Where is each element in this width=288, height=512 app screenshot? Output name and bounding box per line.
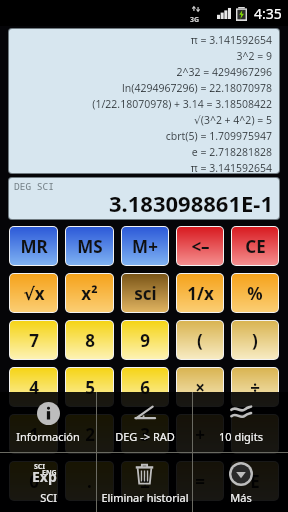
staticText: e = 2.718281828 <box>15 145 272 159</box>
staticText: 3G <box>190 15 200 25</box>
staticText: Exp <box>32 467 57 486</box>
staticText: 10 digits <box>219 429 263 444</box>
button[interactable]: DEG -> RAD <box>97 392 192 452</box>
staticText: π = 3.141592654 <box>15 161 272 173</box>
staticText: - <box>252 423 258 446</box>
staticText: DEG -> RAD <box>115 429 175 444</box>
button[interactable]: x² <box>66 274 113 312</box>
staticText: 7 <box>29 329 39 352</box>
staticText: E <box>250 470 260 493</box>
button[interactable]: 1/x <box>177 274 223 312</box>
button[interactable]: × <box>177 368 223 406</box>
staticText: CE <box>245 235 266 258</box>
staticText: SCI <box>40 490 57 505</box>
button[interactable]: sci <box>122 274 168 312</box>
staticText: % <box>247 282 263 305</box>
button[interactable]: ( <box>177 321 223 359</box>
staticText: 3^2 = 9 <box>15 49 272 63</box>
staticText: ( <box>197 329 203 352</box>
staticText: M+ <box>132 235 158 258</box>
button[interactable]: 10 digits <box>193 392 288 452</box>
staticText: cbrt(5) = 1.709975947 <box>15 129 272 143</box>
staticText: 1 <box>29 423 39 446</box>
staticText: x² <box>81 282 98 305</box>
staticText: MR <box>20 235 48 258</box>
staticText: 2 <box>85 423 95 446</box>
staticText: 8 <box>85 329 95 352</box>
staticText: × <box>195 376 205 399</box>
button[interactable]: Más <box>193 453 288 512</box>
button[interactable]: - <box>232 415 278 453</box>
button[interactable]: SCI <box>0 453 96 512</box>
button[interactable]: CE <box>232 227 278 265</box>
button[interactable]: 1 <box>10 415 57 453</box>
button[interactable]: 9 <box>122 321 168 359</box>
staticText: DEG SCI <box>14 180 54 193</box>
button[interactable]: % <box>232 274 278 312</box>
staticText: SCI <box>34 462 46 472</box>
staticText: sci <box>134 282 157 305</box>
staticText: 5 <box>85 376 95 399</box>
staticText: Más <box>230 490 252 505</box>
button[interactable]: 3 <box>122 415 168 453</box>
staticText: 6 <box>140 376 150 399</box>
staticText: 4:35 <box>254 4 282 23</box>
staticText: 1/x <box>187 282 214 305</box>
staticText: ± <box>140 470 150 493</box>
button[interactable]: MR <box>10 227 57 265</box>
staticText: (1/22.18070978) + 3.14 = 3.18508422 <box>15 97 272 111</box>
button[interactable]: Eliminar historial <box>97 453 192 512</box>
button[interactable]: ± <box>122 462 168 500</box>
staticText: Información <box>16 429 80 444</box>
staticText: π = 3.141592654 <box>15 33 272 47</box>
staticText: 2^32 = 4294967296 <box>15 65 272 79</box>
button[interactable]: 4 <box>10 368 57 406</box>
button[interactable]: 8 <box>66 321 113 359</box>
staticText: ENG <box>42 468 57 478</box>
staticText: MS <box>77 235 103 258</box>
button[interactable]: MS <box>66 227 113 265</box>
staticText: + <box>195 423 205 446</box>
staticText: 3 <box>140 423 150 446</box>
button[interactable]: = <box>177 462 223 500</box>
staticText: 3.183098861E-1 <box>109 188 273 218</box>
staticText: . <box>87 470 92 493</box>
button[interactable]: E <box>232 462 278 500</box>
staticText: ) <box>252 329 258 352</box>
staticText: √(3^2 + 4^2) = 5 <box>15 113 272 127</box>
staticText: = <box>195 470 205 493</box>
button[interactable]: 0 <box>10 462 57 500</box>
button[interactable]: √x <box>10 274 57 312</box>
button[interactable]: ) <box>232 321 278 359</box>
staticText: 4 <box>29 376 39 399</box>
button[interactable]: 5 <box>66 368 113 406</box>
staticText: ÷ <box>250 376 260 399</box>
button[interactable]: Información <box>0 392 96 452</box>
button[interactable]: M+ <box>122 227 168 265</box>
button[interactable]: ÷ <box>232 368 278 406</box>
staticText: ln(4294967296) = 22.18070978 <box>15 81 272 95</box>
button[interactable]: . <box>66 462 113 500</box>
staticText: √x <box>23 282 45 305</box>
staticText: 0 <box>29 470 39 493</box>
staticText: 9 <box>140 329 150 352</box>
button[interactable]: 7 <box>10 321 57 359</box>
staticText: <– <box>191 235 210 258</box>
button[interactable]: + <box>177 415 223 453</box>
staticText: Eliminar historial <box>101 490 189 505</box>
button[interactable]: <– <box>177 227 223 265</box>
button[interactable]: 6 <box>122 368 168 406</box>
button[interactable]: 2 <box>66 415 113 453</box>
